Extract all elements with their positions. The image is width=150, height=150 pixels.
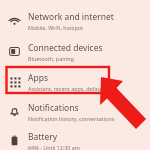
button[interactable]: Notifications — [0, 101, 150, 122]
staticText: Assistant, recent apps, default apps — [28, 85, 118, 92]
staticText: Mobile, Wi-Fi, hotspot — [28, 24, 83, 31]
button[interactable]: Connected devices — [0, 41, 150, 62]
staticText: 64% - Until 12:30 am — [28, 144, 80, 150]
staticText: Connected devices — [28, 42, 103, 54]
button[interactable]: Apps — [0, 71, 150, 92]
button[interactable]: Battery — [0, 131, 150, 150]
button[interactable]: Network and internet — [0, 10, 150, 31]
staticText: Bluetooth, pairing — [28, 55, 74, 62]
staticText: Network and internet — [28, 11, 114, 23]
staticText: Notification history, conversations — [28, 115, 115, 122]
staticText: Battery — [28, 131, 58, 143]
staticText: Apps — [28, 72, 48, 84]
staticText: Notifications — [28, 102, 79, 114]
